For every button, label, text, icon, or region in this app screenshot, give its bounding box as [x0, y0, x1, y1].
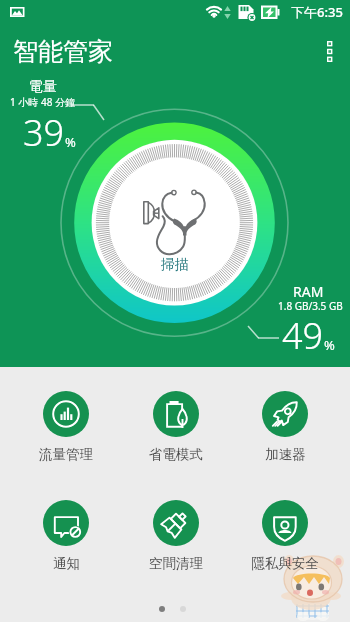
staticText: 隱私與安全 [251, 555, 319, 572]
staticText: 通知 [53, 555, 80, 572]
button[interactable]: 隱私與安全 [237, 500, 333, 572]
staticText: 掃描 [161, 256, 189, 274]
button[interactable]: 加速器 [237, 391, 333, 463]
button[interactable]: 流量管理 [18, 391, 114, 463]
staticText: RAM [293, 282, 324, 301]
staticText: 49 [282, 311, 324, 360]
staticText: % [65, 133, 76, 151]
staticText: 電量 [29, 78, 57, 96]
staticText: 1 小時 48 分鐘 [10, 95, 75, 109]
staticText: 流量管理 [39, 446, 93, 463]
button[interactable]: 省電模式 [128, 391, 224, 463]
staticText: 下午6:35 [291, 3, 343, 21]
staticText: 省電模式 [149, 446, 203, 463]
staticText: 空間清理 [149, 555, 203, 572]
button[interactable]: Scan [138, 188, 208, 258]
button[interactable]: 通知 [18, 500, 114, 572]
staticText: 智能管家 [13, 36, 113, 67]
button[interactable]: 空間清理 [128, 500, 224, 572]
staticText: % [324, 336, 335, 354]
button[interactable]: More options [316, 36, 344, 64]
staticText: 39 [23, 108, 65, 157]
staticText: 1.8 GB/3.5 GB [278, 299, 343, 313]
staticText: 加速器 [265, 446, 306, 463]
